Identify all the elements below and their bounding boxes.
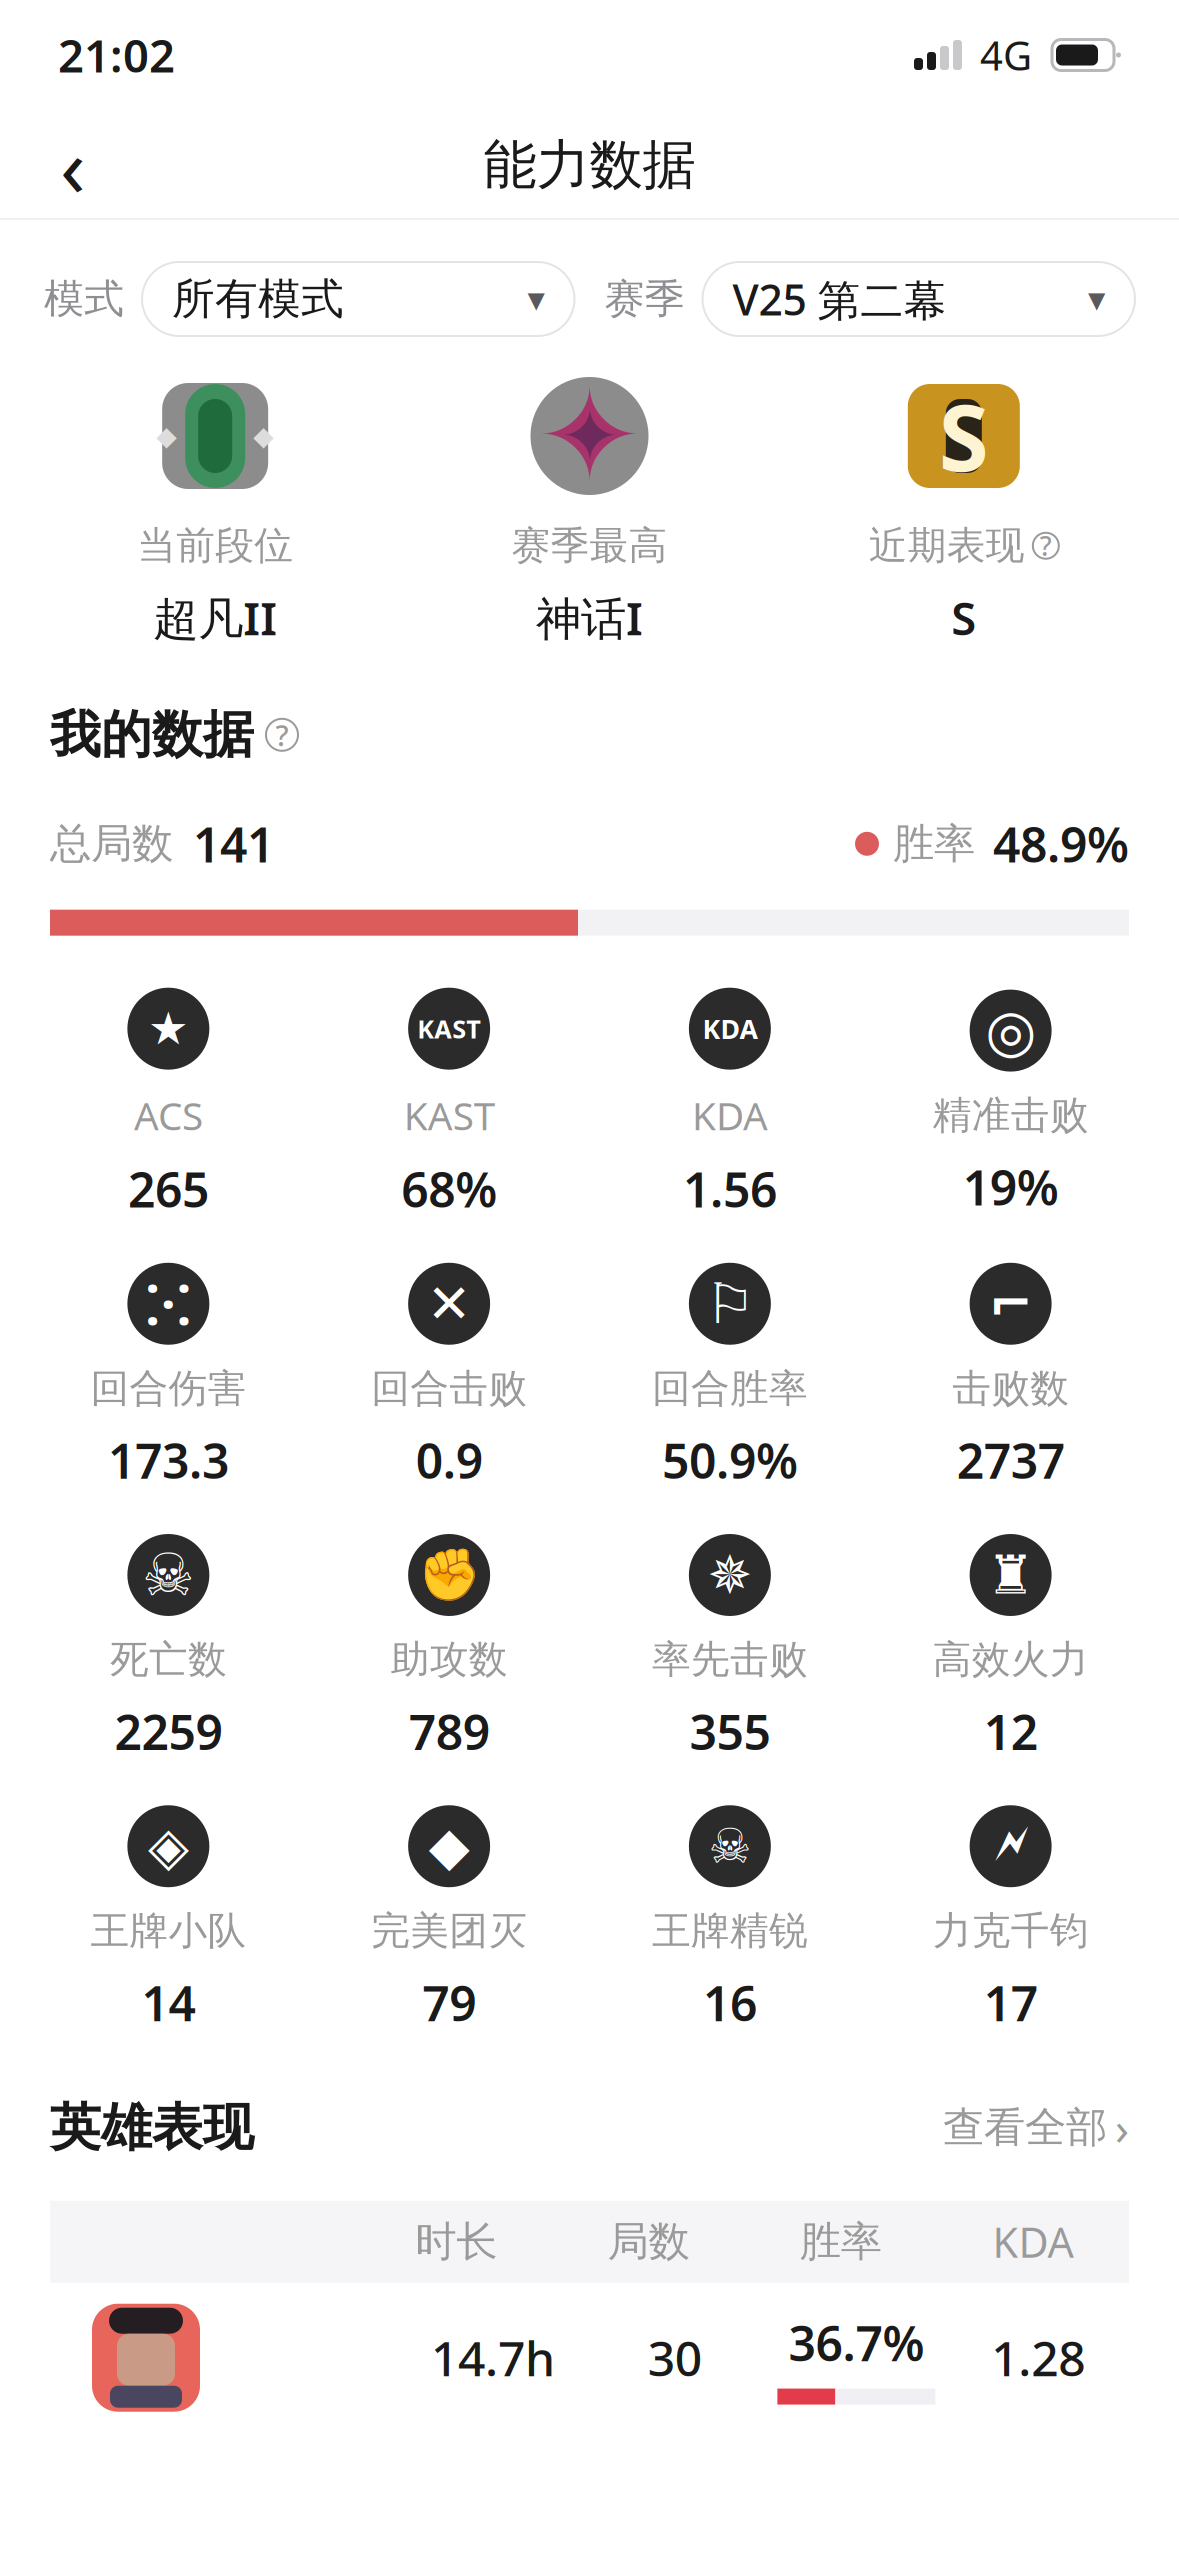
button[interactable]: 查看全部 [943, 2097, 1129, 2158]
staticText: 48.9% [993, 812, 1129, 876]
staticText: ✕ [427, 1273, 472, 1334]
staticText: 12 [984, 1699, 1038, 1763]
staticText: 1.28 [991, 2326, 1085, 2389]
staticText: 回合胜率 [652, 1365, 808, 1412]
staticText: ✦ [559, 395, 619, 477]
staticText: 21:02 [58, 25, 175, 85]
staticText: ACS [134, 1090, 203, 1141]
staticText: 2259 [114, 1699, 222, 1763]
staticText: 赛季 [604, 274, 684, 323]
staticText: 4G [980, 28, 1032, 81]
staticText: V25 第二幕 [732, 271, 946, 327]
staticText: KAST [404, 1090, 495, 1141]
staticText: KAST [417, 1012, 481, 1045]
staticText: 胜率 [893, 818, 975, 869]
staticText: 🗲 [994, 1821, 1028, 1871]
staticText: ☠ [142, 1542, 195, 1608]
staticText: 2737 [957, 1428, 1065, 1492]
staticText: 击败数 [952, 1365, 1069, 1412]
staticText: S [951, 587, 976, 648]
staticText: 789 [409, 1699, 490, 1763]
staticText: 模式 [44, 274, 124, 323]
staticText: ✵ [707, 1545, 752, 1605]
staticText: ◆ [253, 421, 274, 451]
staticText: ‹ [60, 110, 86, 220]
staticText: KDA [702, 1011, 757, 1046]
staticText: 王牌精锐 [652, 1907, 808, 1955]
staticText: ⌐ [988, 1273, 1033, 1334]
staticText: 173.3 [108, 1428, 229, 1492]
staticText: KDA [992, 2214, 1073, 2269]
button[interactable]: 14.7h [50, 2283, 1129, 2433]
staticText: 17 [984, 1971, 1038, 2034]
staticText: 近期表现 [869, 522, 1025, 569]
button[interactable]: Back [28, 120, 118, 210]
staticText: 355 [689, 1699, 770, 1763]
staticText: 查看全部 [943, 2102, 1107, 2153]
staticText: 16 [703, 1971, 757, 2034]
staticText: 79 [422, 1971, 476, 2034]
staticText: ⁙ [145, 1268, 192, 1339]
staticText: ◎ [985, 997, 1036, 1064]
staticText: ▾ [1088, 279, 1105, 319]
staticText: ⚐ [705, 1272, 755, 1336]
staticText: 胜率 [800, 2216, 882, 2267]
staticText: 当前段位 [137, 522, 293, 569]
staticText: ✊ [418, 1546, 481, 1604]
staticText: 高效火力 [933, 1636, 1089, 1683]
staticText: 50.9% [662, 1428, 798, 1492]
staticText: 精准击败 [933, 1092, 1089, 1139]
staticText: ▾ [527, 279, 544, 319]
staticText: S [939, 376, 989, 496]
staticText: 总局数 [50, 818, 173, 869]
staticText: 助攻数 [391, 1636, 508, 1683]
staticText: 19% [963, 1155, 1059, 1219]
staticText: 力克千钧 [933, 1907, 1089, 1955]
staticText: 局数 [607, 2216, 689, 2267]
staticText: ◆ [429, 1816, 470, 1876]
staticText: 回合伤害 [90, 1365, 246, 1412]
staticText: ◆ [156, 421, 177, 451]
staticText: ◈ [148, 1816, 189, 1876]
staticText: 所有模式 [172, 273, 344, 325]
button[interactable]: V25 第二幕 [702, 262, 1135, 336]
staticText: › [1115, 2097, 1129, 2158]
staticText: 141 [193, 812, 274, 876]
button[interactable]: 所有模式 [142, 262, 574, 336]
staticText: 30 [648, 2326, 702, 2389]
staticText: 265 [128, 1157, 209, 1221]
staticText: ♜ [987, 1545, 1035, 1605]
button[interactable]: About my data [266, 719, 298, 751]
staticText: 68% [401, 1157, 497, 1221]
staticText: ? [275, 715, 288, 754]
staticText: 王牌小队 [90, 1907, 246, 1955]
staticText: 36.7% [788, 2311, 924, 2374]
staticText: KDA [692, 1090, 768, 1141]
staticText: 死亡数 [110, 1636, 227, 1683]
staticText: 赛季最高 [511, 522, 667, 569]
staticText: 1.56 [683, 1157, 777, 1221]
staticText: 回合击败 [371, 1365, 527, 1412]
staticText: ✦ [536, 363, 643, 509]
staticText: ☠ [708, 1819, 751, 1873]
staticText: ★ [148, 1003, 189, 1054]
staticText: 率先击败 [652, 1636, 808, 1683]
staticText: 神话I [536, 587, 643, 648]
staticText: ? [1040, 528, 1052, 563]
staticText: 时长 [415, 2216, 497, 2267]
staticText: 超凡II [153, 587, 277, 648]
staticText: 14.7h [431, 2326, 555, 2389]
staticText: 英雄表现 [50, 2096, 254, 2159]
staticText: 完美团灭 [371, 1907, 527, 1955]
staticText: 我的数据 [50, 704, 254, 766]
staticText: 0.9 [416, 1428, 483, 1492]
staticText: 能力数据 [483, 132, 695, 198]
staticText: 14 [141, 1971, 195, 2034]
